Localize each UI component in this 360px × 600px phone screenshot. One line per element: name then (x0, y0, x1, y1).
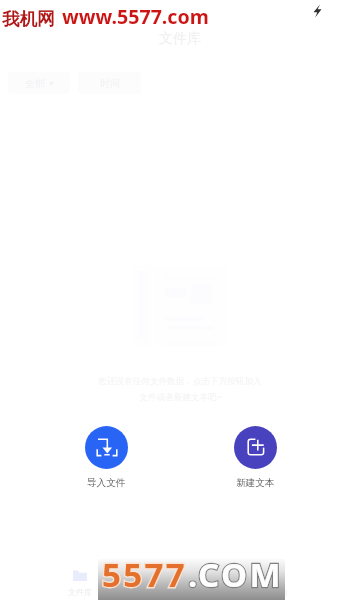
button[interactable]: 转换 (130, 564, 230, 597)
button[interactable]: 文件库 (30, 564, 130, 597)
staticText: 全部 (25, 77, 45, 90)
button[interactable]: 我的 (230, 564, 330, 597)
staticText: .COM (188, 552, 283, 593)
staticText: .COM (188, 552, 283, 593)
staticText: 5577 (102, 552, 188, 593)
staticText: 我机网 (2, 8, 55, 30)
staticText: 文件库 (68, 587, 92, 597)
staticText: 5577 (102, 552, 188, 593)
button[interactable]: 新建文本 (234, 426, 277, 489)
staticText: 时间 (100, 77, 120, 90)
staticText: 文件库 (159, 30, 201, 48)
staticText: 您还没有任何文件数据，点击下方按钮加入 (98, 376, 262, 387)
other: Battery charging (0, 0, 360, 20)
staticText: www.5577.com (62, 3, 209, 30)
staticText: 转换 (172, 587, 188, 597)
staticText: 文件或者新建文本吧~ (139, 391, 222, 403)
staticText: 导入文件 (87, 477, 126, 489)
staticText: 我的 (272, 587, 288, 597)
button[interactable]: 导入文件 (85, 426, 128, 489)
staticText: 新建文本 (236, 477, 275, 489)
